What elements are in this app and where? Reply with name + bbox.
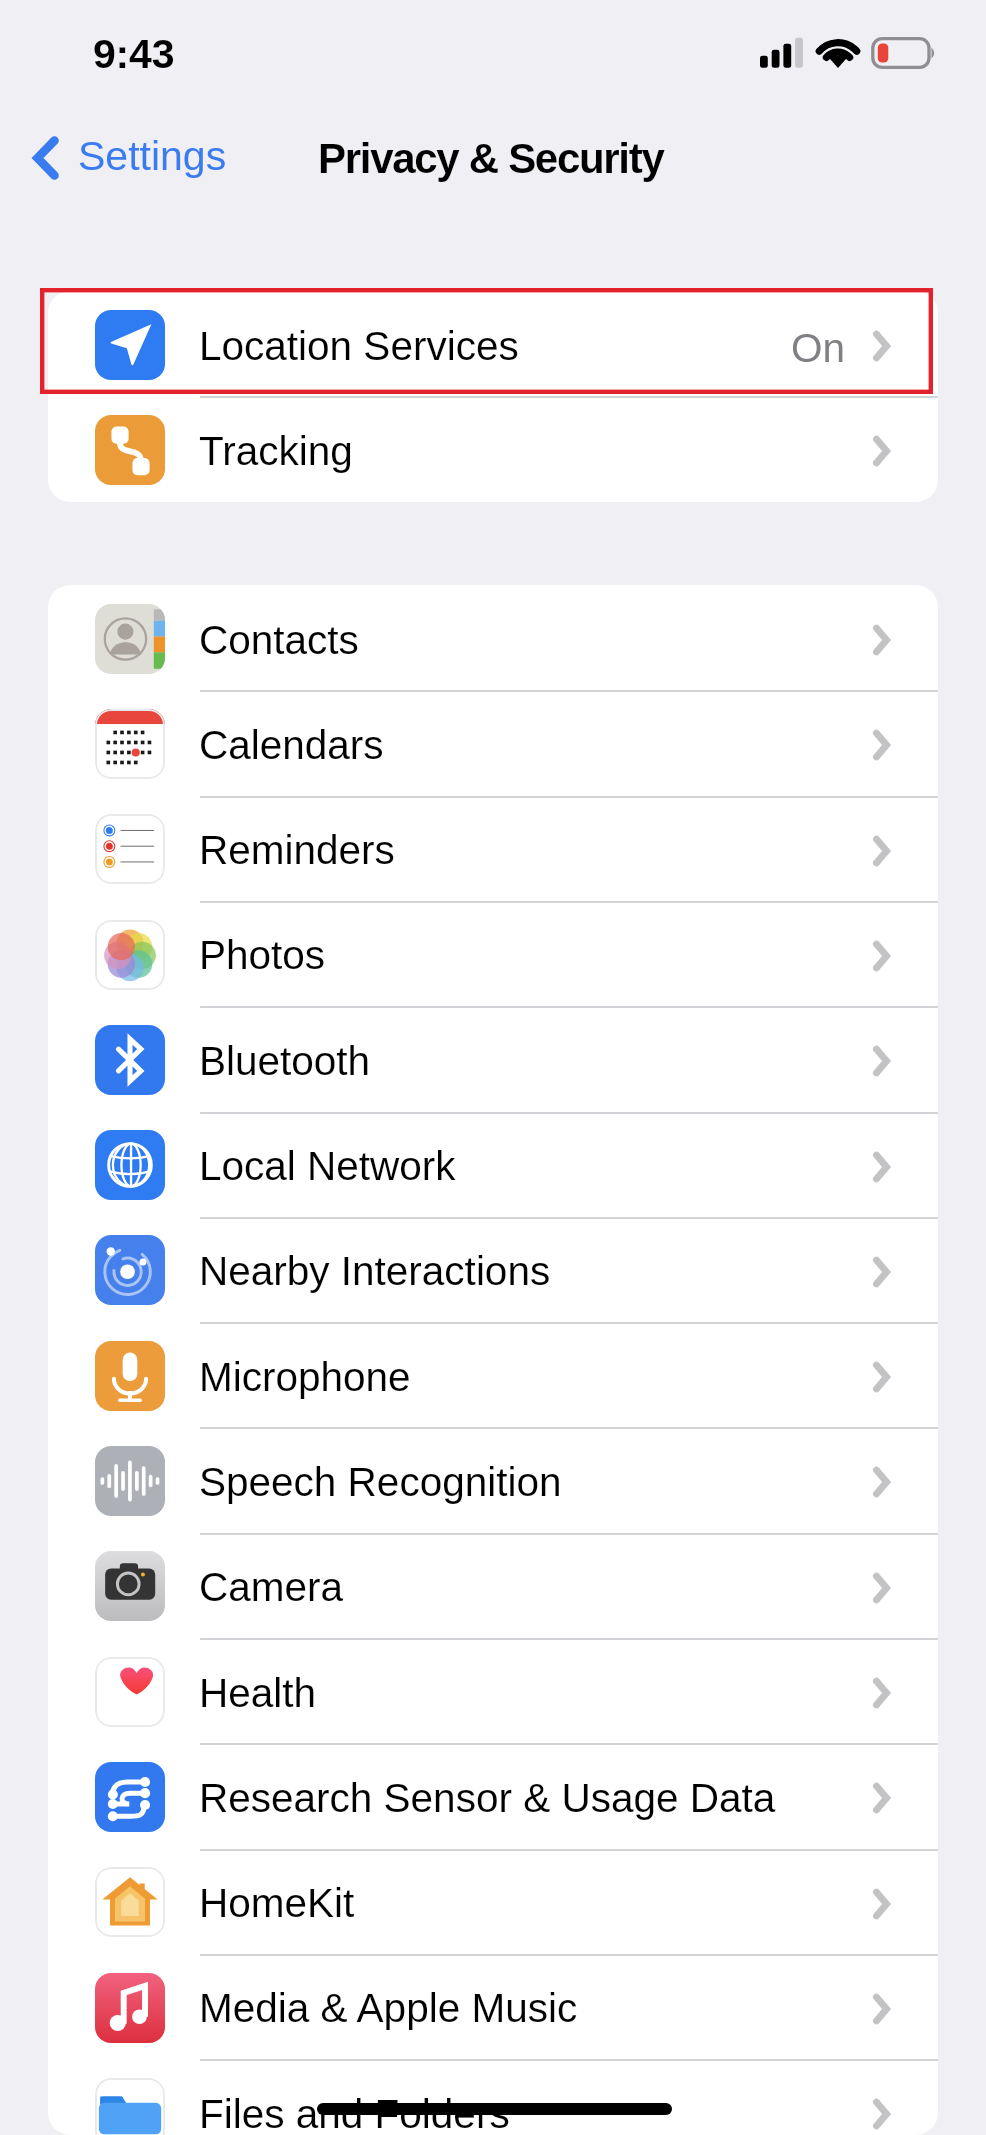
button[interactable] — [48, 1533, 938, 1638]
button[interactable] — [48, 1217, 938, 1322]
button[interactable]: Back to Settings — [22, 122, 241, 188]
staticText: Speech Recognition — [199, 1459, 562, 1504]
staticText: Research Sensor & Usage Data — [199, 1775, 776, 1820]
staticText: Contacts — [199, 617, 359, 662]
staticText: Microphone — [199, 1354, 411, 1399]
staticText: Media & Apple Music — [199, 1985, 578, 2030]
staticText: Health — [199, 1670, 317, 1715]
button[interactable] — [48, 585, 938, 690]
button[interactable] — [48, 396, 938, 501]
staticText: Tracking — [199, 428, 353, 473]
staticText: Location Services — [199, 323, 519, 368]
staticText: Photos — [199, 932, 326, 977]
button[interactable] — [48, 2059, 938, 2135]
staticText: On — [791, 325, 846, 370]
staticText: 9:43 — [93, 31, 175, 77]
staticText: Bluetooth — [199, 1038, 371, 1083]
staticText: Local Network — [199, 1143, 456, 1188]
staticText: Files and Folders — [199, 2091, 510, 2135]
button[interactable] — [48, 291, 938, 396]
staticText: HomeKit — [199, 1880, 355, 1925]
button[interactable] — [48, 1638, 938, 1743]
button[interactable] — [48, 1954, 938, 2059]
staticText: Camera — [199, 1564, 344, 1609]
button[interactable] — [48, 1427, 938, 1532]
staticText: Settings — [78, 133, 227, 179]
button[interactable] — [48, 1849, 938, 1954]
button[interactable] — [48, 796, 938, 901]
button[interactable] — [48, 1322, 938, 1427]
button[interactable] — [48, 901, 938, 1006]
button[interactable] — [48, 1743, 938, 1848]
staticText: Reminders — [199, 827, 395, 872]
button[interactable] — [48, 1112, 938, 1217]
button[interactable] — [48, 690, 938, 795]
staticText: Calendars — [199, 722, 384, 767]
button[interactable] — [48, 1006, 938, 1111]
staticText: Nearby Interactions — [199, 1248, 551, 1293]
staticText: Privacy & Security — [318, 135, 664, 182]
